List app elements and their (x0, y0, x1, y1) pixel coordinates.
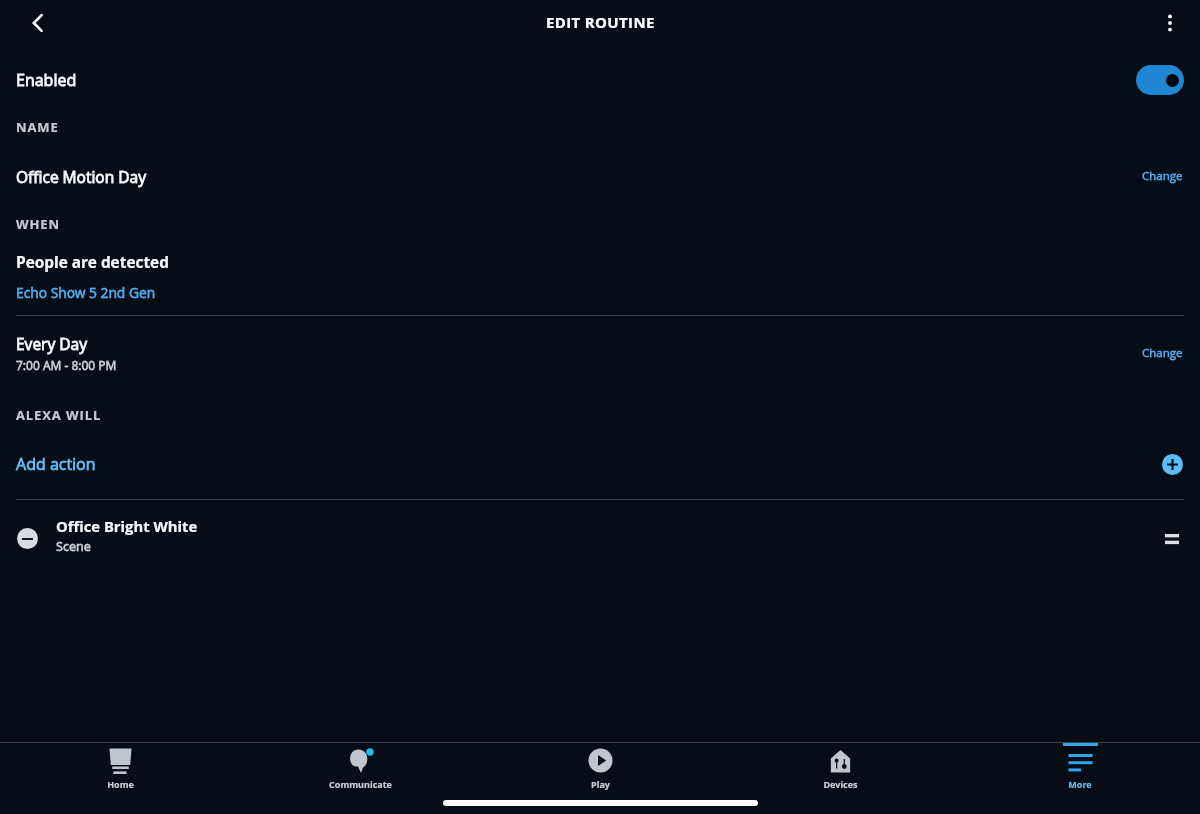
staticText: 7:00 AM - 8:00 PM (16, 357, 117, 373)
button[interactable]: More (960, 742, 1200, 814)
staticText: Home (107, 778, 134, 790)
button[interactable]: Change (1135, 341, 1190, 365)
button[interactable]: Remove action (17, 528, 38, 549)
button[interactable]: Remove action (0, 507, 1200, 563)
staticText: NAME (16, 118, 59, 136)
staticText: Scene (56, 538, 91, 555)
staticText: Office Bright White (56, 516, 198, 536)
staticText: Change (1142, 345, 1183, 361)
button[interactable]: Change (1135, 164, 1190, 188)
button[interactable]: Play (480, 742, 720, 814)
staticText: Play (591, 778, 610, 790)
staticText: WHEN (16, 215, 60, 233)
button[interactable]: Reorder (1159, 526, 1185, 552)
button[interactable]: Add action (0, 441, 1200, 487)
staticText: Every Day (16, 333, 87, 354)
staticText: EDIT ROUTINE (546, 12, 655, 32)
other: Add action (1162, 454, 1183, 475)
button[interactable]: Office Motion Day (0, 153, 1200, 199)
button[interactable]: Enabled (0, 57, 1200, 103)
button[interactable]: Every Day (0, 325, 1200, 381)
button[interactable]: Home (0, 742, 240, 814)
button[interactable]: People are detected (0, 252, 1200, 302)
button[interactable]: More options (1140, 0, 1200, 46)
staticText: More (1068, 778, 1092, 790)
button[interactable]: Devices (720, 742, 960, 814)
staticText: People are detected (16, 252, 169, 273)
staticText: Communicate (329, 778, 392, 790)
button[interactable]: Communicate (240, 742, 480, 814)
button[interactable]: Back (0, 0, 76, 46)
staticText: Devices (823, 778, 858, 790)
staticText: Echo Show 5 2nd Gen (16, 283, 156, 302)
staticText: Enabled (16, 69, 77, 91)
staticText: Office Motion Day (16, 166, 147, 187)
staticText: Change (1142, 168, 1183, 184)
staticText: Add action (16, 453, 96, 475)
staticText: ALEXA WILL (16, 406, 102, 424)
